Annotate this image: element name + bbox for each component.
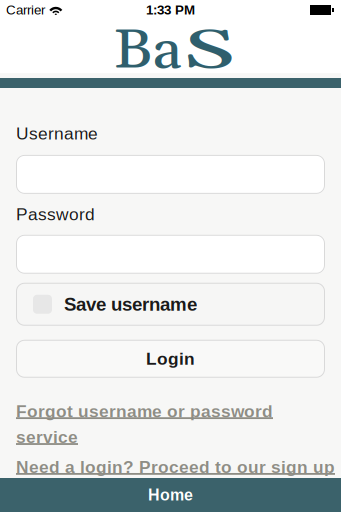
staticText: Forgot username or password service	[16, 402, 273, 447]
staticText: Login	[146, 349, 195, 368]
staticText: Carrier	[6, 3, 45, 17]
button[interactable]: Forgot username or password service	[16, 402, 306, 447]
staticText: Ba	[114, 18, 178, 86]
staticText: Password	[16, 205, 95, 224]
staticText: Username	[16, 124, 98, 143]
staticText: Home	[148, 486, 193, 504]
button[interactable]: Login	[16, 340, 325, 378]
staticText: Save username	[64, 294, 197, 314]
button[interactable]: Home	[0, 478, 341, 512]
button[interactable]: Save username	[16, 283, 325, 326]
staticText: S	[183, 18, 214, 86]
button[interactable]: Need a login? Proceed to our sign up	[16, 457, 325, 476]
staticText: Need a login? Proceed to our sign up	[16, 457, 335, 476]
staticText: 1:33 PM	[146, 3, 195, 17]
